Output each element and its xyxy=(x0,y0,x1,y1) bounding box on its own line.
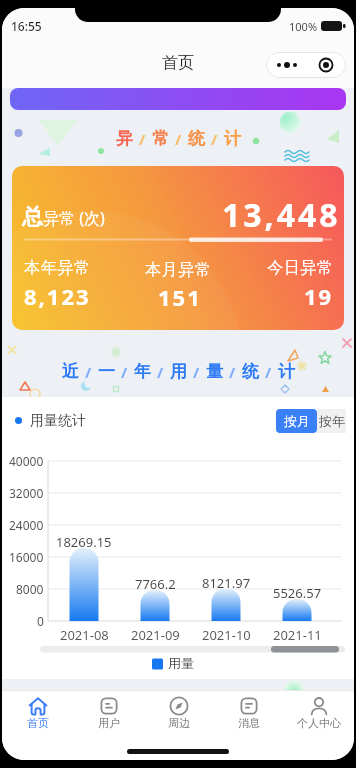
staticText: 7766.2 xyxy=(135,575,176,590)
staticText: 异常 xyxy=(43,209,75,229)
staticText: 2021-11 xyxy=(273,626,322,642)
staticText: 一 xyxy=(98,361,115,382)
button[interactable]: 首页 xyxy=(2,691,73,741)
staticText: / xyxy=(229,362,236,382)
staticText: 8000 xyxy=(16,581,44,597)
staticText: 5526.57 xyxy=(273,584,322,599)
staticText: 用 xyxy=(170,361,187,382)
staticText: 2021-08 xyxy=(60,626,109,642)
staticText: 个人中心 xyxy=(297,716,341,730)
button[interactable]: 用户 xyxy=(73,691,144,741)
staticText: 18269.15 xyxy=(56,533,112,548)
staticText: / xyxy=(175,129,182,149)
staticText: 0 xyxy=(37,613,44,629)
staticText: 统 xyxy=(242,361,259,382)
staticText: 按月 xyxy=(284,413,310,429)
staticText: 量 xyxy=(206,361,223,382)
staticText: 计 xyxy=(278,361,295,382)
staticText: 用量统计 xyxy=(30,412,86,430)
button[interactable]: 总 xyxy=(12,166,344,330)
button[interactable]: 按月 xyxy=(276,409,317,433)
staticText: 用户 xyxy=(98,716,120,730)
staticText: 本月异常 xyxy=(145,260,211,280)
staticText: / xyxy=(139,129,146,149)
staticText: 本年异常 xyxy=(24,258,90,278)
staticText: 今日异常 xyxy=(267,258,333,278)
staticText: 2021-09 xyxy=(131,626,180,642)
staticText: 32000 xyxy=(9,485,44,501)
staticText: 首页 xyxy=(27,716,49,730)
staticText: 用量 xyxy=(168,655,194,671)
staticText: / xyxy=(121,362,128,382)
staticText: 年 xyxy=(134,361,151,382)
staticText: 19 xyxy=(304,281,334,311)
staticText: 总 xyxy=(22,204,43,230)
staticText: 异 xyxy=(116,128,133,149)
staticText: / xyxy=(211,129,218,149)
staticText: 16000 xyxy=(9,549,44,565)
staticText: 按年 xyxy=(319,413,345,429)
button[interactable] xyxy=(266,52,346,78)
staticText: 8,123 xyxy=(24,281,91,311)
staticText: 首页 xyxy=(162,53,194,73)
staticText: 24000 xyxy=(9,517,44,533)
staticText: (次) xyxy=(75,207,105,229)
staticText: / xyxy=(193,362,200,382)
staticText: 16:55 xyxy=(11,18,42,34)
staticText: 常 xyxy=(152,128,169,149)
staticText: 100% xyxy=(289,19,318,34)
staticText: 2021-10 xyxy=(202,626,251,642)
staticText: 周边 xyxy=(168,716,190,730)
button[interactable]: 消息 xyxy=(214,691,284,741)
button[interactable]: 按年 xyxy=(317,409,346,433)
button[interactable]: 周边 xyxy=(144,691,214,741)
button[interactable]: 个人中心 xyxy=(284,691,354,741)
staticText: / xyxy=(157,362,164,382)
staticText: / xyxy=(265,362,272,382)
staticText: 8121.97 xyxy=(202,574,251,589)
staticText: 40000 xyxy=(9,453,44,469)
staticText: 151 xyxy=(158,282,202,312)
staticText: 13,448 xyxy=(222,193,341,237)
staticText: / xyxy=(85,362,92,382)
button[interactable] xyxy=(10,88,346,110)
staticText: 近 xyxy=(62,361,79,382)
staticText: 消息 xyxy=(238,716,260,730)
staticText: 统 xyxy=(188,128,205,149)
staticText: 计 xyxy=(224,128,241,149)
